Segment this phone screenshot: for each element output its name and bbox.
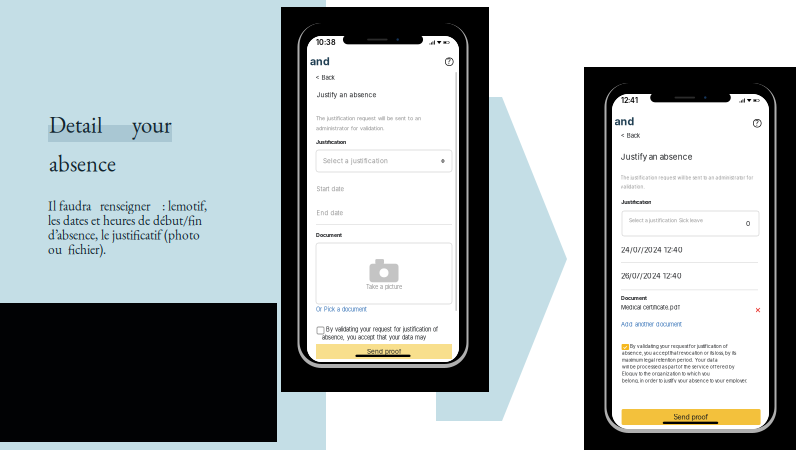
- button[interactable]: 26/07/2024 12:40: [621, 266, 758, 286]
- staticText: absence: [49, 149, 116, 178]
- staticText: absence, you accept that revocation or i…: [622, 350, 736, 356]
- button[interactable]: End date: [316, 203, 452, 223]
- staticText: 12:41: [621, 96, 638, 105]
- button[interactable]: Help: [445, 57, 453, 66]
- button[interactable]: Add another document: [619, 319, 684, 330]
- staticText: and: [614, 115, 634, 128]
- button[interactable]: < Back: [618, 129, 643, 142]
- staticText: Justify an absence: [316, 91, 376, 99]
- button[interactable]: Or Pick a document: [314, 304, 369, 315]
- button[interactable]: Send proof: [316, 344, 452, 359]
- staticText: administrator for validation.: [316, 125, 385, 131]
- staticText: d’absence, le justificatif (photo: [48, 226, 200, 243]
- staticText: les dates et heures de début/fin: [48, 211, 202, 229]
- staticText: Justification: [316, 139, 346, 145]
- staticText: < Back: [621, 132, 640, 139]
- staticText: ?: [447, 58, 451, 66]
- staticText: Select a justification Sick leave: [629, 217, 703, 223]
- staticText: belong, in order to justify your absence…: [622, 378, 747, 383]
- staticText: ?: [755, 119, 759, 127]
- staticText: Justification: [621, 199, 651, 205]
- staticText: Il faudra renseigner : lemotif,: [48, 197, 207, 214]
- staticText: validation.: [620, 184, 644, 190]
- button[interactable]: < Back: [312, 71, 337, 84]
- button[interactable]: 24/07/2024 12:40: [621, 240, 758, 260]
- staticText: and: [310, 55, 330, 68]
- staticText: The justification request will be sent t…: [620, 175, 753, 181]
- staticText: ✓: [623, 344, 628, 350]
- button[interactable]: Send proof: [622, 409, 761, 425]
- staticText: By validating your request for justifica…: [630, 343, 728, 349]
- button[interactable]: Select a justification: [316, 150, 452, 172]
- staticText: absence, you accept that your data may: [322, 334, 426, 341]
- staticText: maximum legal retention period. Your dat…: [622, 357, 718, 363]
- staticText: Detail your: [49, 110, 172, 140]
- staticText: Document: [621, 295, 647, 301]
- staticText: Eloquy to the organization to which you: [622, 371, 710, 377]
- staticText: Send proof: [367, 348, 401, 355]
- button[interactable]: Select a justification Sick leave: [622, 211, 759, 236]
- staticText: Start date: [316, 185, 343, 193]
- staticText: Add another document: [621, 321, 682, 328]
- staticText: The justification request will be sent t…: [316, 115, 421, 121]
- staticText: Justify an absence: [621, 152, 693, 162]
- staticText: ✕: [754, 305, 761, 315]
- staticText: 0: [746, 219, 750, 228]
- staticText: Medical certificate.pdf: [621, 304, 680, 311]
- staticText: 24/07/2024 12:40: [621, 246, 683, 254]
- button[interactable]: Take a picture: [316, 243, 452, 304]
- staticText: will be processed as part of the service…: [622, 364, 735, 370]
- staticText: Or Pick a document: [316, 306, 367, 313]
- staticText: ou fichier).: [48, 240, 106, 258]
- button[interactable]: Start date: [316, 179, 452, 199]
- button[interactable]: Help: [753, 119, 761, 127]
- staticText: End date: [316, 209, 342, 217]
- staticText: 10:38: [316, 38, 336, 47]
- staticText: 26/07/2024 12:40: [621, 272, 682, 280]
- staticText: Select a justification: [323, 157, 388, 165]
- button[interactable]: Remove document: [753, 304, 763, 316]
- staticText: Take a picture: [366, 283, 402, 290]
- staticText: Send proof: [674, 413, 709, 421]
- staticText: Document: [316, 232, 342, 238]
- staticText: < Back: [315, 74, 334, 81]
- staticText: By validating your request for justifica…: [326, 326, 438, 333]
